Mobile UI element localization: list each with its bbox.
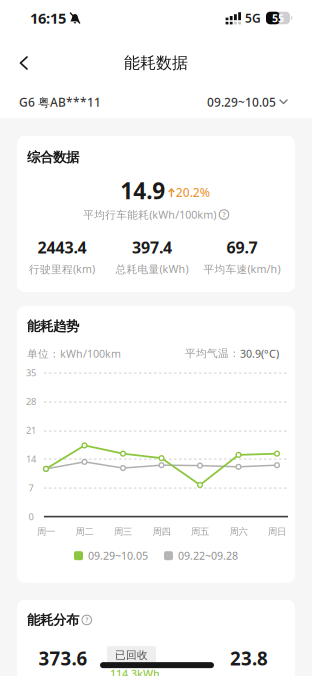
staticText: 综合数据 [27, 149, 79, 165]
button[interactable]: Help [82, 615, 91, 625]
staticText: 周一 [37, 526, 55, 537]
staticText: 0 [28, 510, 33, 523]
staticText: 已回收 [115, 649, 148, 662]
staticText: 21 [26, 424, 36, 436]
staticText: 单位：kWh/100km [27, 346, 121, 361]
staticText: ? [85, 615, 88, 624]
staticText: 397.4 [132, 237, 172, 258]
staticText: G6 粤AB***11 [19, 94, 101, 110]
button[interactable]: Help [219, 210, 229, 219]
staticText: 23.8 [230, 646, 268, 670]
staticText: 69.7 [226, 237, 257, 258]
staticText: 周六 [229, 526, 247, 537]
staticText: 16:15 [30, 8, 66, 28]
button[interactable]: 09.29~10.05 [207, 94, 288, 110]
staticText: 14.9 [120, 175, 165, 205]
staticText: 平均车速(km/h) [203, 262, 280, 276]
staticText: 周日 [268, 526, 286, 537]
staticText: 2443.4 [37, 237, 86, 258]
staticText: 能耗分布 [27, 612, 79, 628]
staticText: 14 [26, 453, 36, 465]
staticText: 373.6 [38, 646, 87, 670]
staticText: 30.9(°C) [240, 346, 279, 361]
staticText: 09.29~10.05 [207, 94, 276, 110]
staticText: 周五 [191, 526, 209, 537]
staticText: 周二 [75, 526, 93, 537]
staticText: 35 [26, 366, 36, 379]
staticText: 114.3kWh [110, 667, 160, 676]
staticText: 平均行车能耗(kWh/100km) [83, 207, 216, 222]
staticText: 周三 [114, 526, 132, 537]
staticText: 行驶里程(km) [29, 262, 95, 276]
staticText: 能耗趋势 [27, 318, 79, 334]
staticText: 平均气温： [185, 347, 240, 360]
staticText: 能耗数据 [124, 53, 188, 73]
button[interactable]: Back [0, 41, 39, 85]
staticText: 总耗电量(kWh) [115, 262, 188, 276]
staticText: 09.22~09.28 [178, 549, 238, 563]
staticText: 5G [245, 10, 261, 26]
staticText: 09.29~10.05 [88, 549, 148, 563]
staticText: 20.2% [176, 184, 210, 200]
staticText: 周四 [152, 526, 170, 537]
staticText: ? [222, 210, 225, 219]
staticText: 55 [272, 11, 284, 25]
staticText: 28 [26, 395, 36, 408]
staticText: 7 [28, 482, 33, 494]
